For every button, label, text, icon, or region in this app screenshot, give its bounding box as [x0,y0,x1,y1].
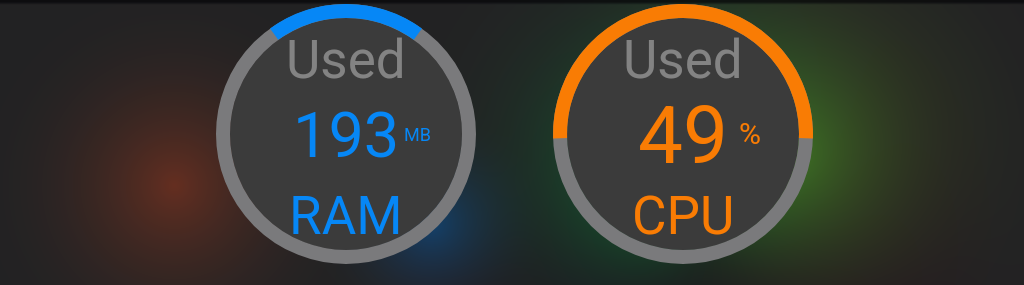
staticText: RAM [289,185,403,247]
staticText: % [739,116,761,151]
button[interactable]: RAM used 193 megabytes [216,4,476,264]
staticText: Used [623,29,743,91]
staticText: 193 [293,99,400,173]
staticText: Used [286,29,406,91]
staticText: MB [404,124,431,145]
staticText: CPU [632,185,735,247]
staticText: 49 [638,89,728,183]
button[interactable]: CPU used 49 percent [553,4,813,264]
